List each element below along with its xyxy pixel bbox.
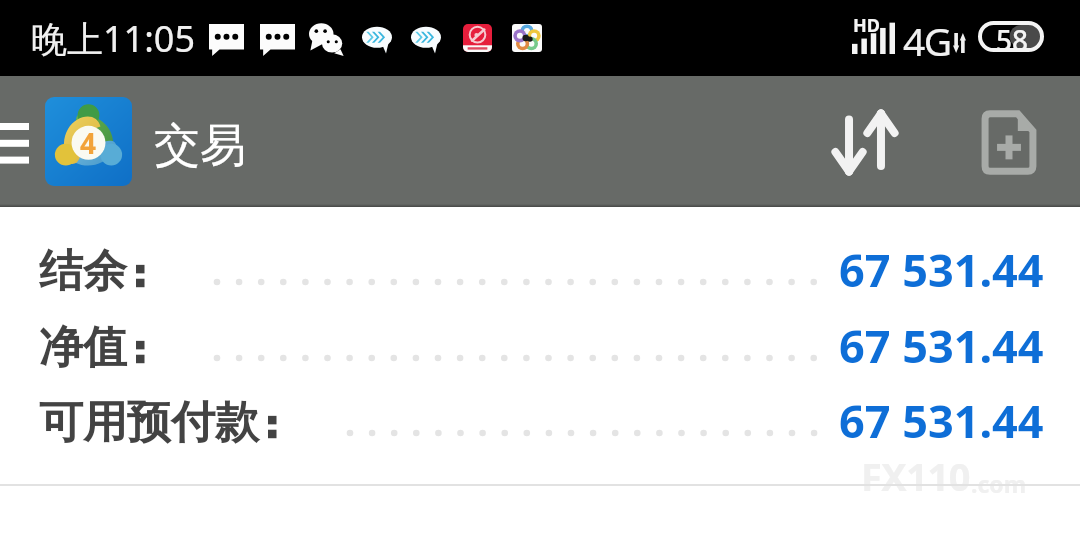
- staticText: 晚上11:05: [31, 14, 196, 63]
- button[interactable]: 净值: [0, 309, 1080, 385]
- staticText: 67 531.44: [839, 390, 1044, 451]
- staticText: 4: [80, 124, 97, 162]
- button[interactable]: 结余: [0, 233, 1080, 309]
- staticText: 58: [996, 21, 1029, 52]
- staticText: 交易: [154, 117, 246, 175]
- staticText: .com: [971, 468, 1027, 499]
- staticText: 结余: [39, 244, 127, 299]
- button[interactable]: Menu: [0, 117, 29, 167]
- button[interactable]: 可用预付款: [0, 384, 1080, 460]
- staticText: 可用预付款: [39, 395, 259, 450]
- staticText: 净值: [39, 320, 127, 375]
- staticText: 67 531.44: [839, 239, 1044, 300]
- button[interactable]: Sort: [801, 92, 929, 192]
- staticText: FX110: [861, 450, 971, 502]
- staticText: 67 531.44: [839, 315, 1044, 376]
- button[interactable]: New order: [958, 92, 1060, 192]
- staticText: 4G: [903, 14, 951, 67]
- staticText: HD: [853, 13, 880, 38]
